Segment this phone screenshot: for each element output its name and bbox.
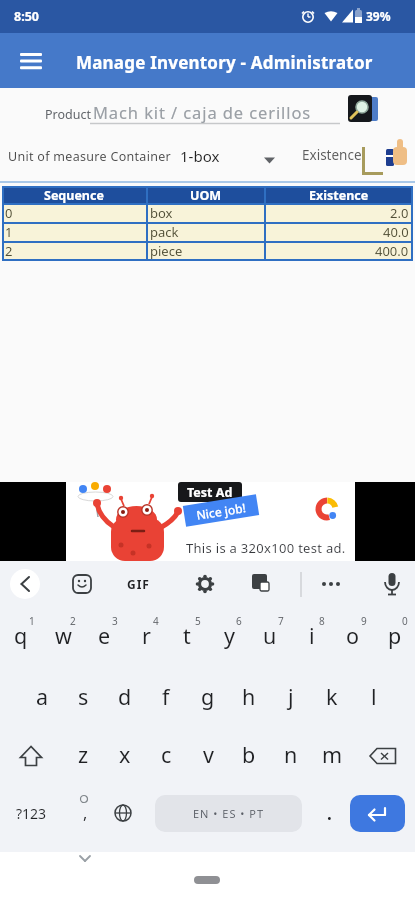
staticText: q — [14, 621, 28, 650]
staticText: g — [201, 682, 215, 711]
button[interactable]: p — [374, 608, 415, 663]
staticText: m — [322, 740, 343, 769]
staticText: 2.0 — [390, 204, 409, 222]
staticText: ?123 — [16, 804, 47, 823]
button[interactable]: z — [62, 727, 104, 782]
staticText: r — [142, 621, 151, 650]
staticText: piece — [150, 242, 183, 260]
staticText: d — [118, 682, 132, 711]
button[interactable]: r — [125, 608, 167, 663]
staticText: 2 — [5, 242, 13, 260]
button[interactable]: y — [208, 608, 250, 663]
staticText: v — [203, 740, 214, 769]
button[interactable]: m — [311, 727, 353, 782]
staticText: f — [162, 682, 170, 711]
staticText: GIF — [127, 576, 150, 592]
button[interactable] — [0, 727, 62, 782]
staticText: w — [55, 621, 72, 650]
button[interactable]: k — [311, 669, 353, 724]
button[interactable]: a — [21, 669, 63, 724]
staticText: 1 — [5, 223, 13, 241]
staticText: 8:50 — [14, 8, 39, 25]
staticText: 9 — [361, 614, 367, 628]
staticText: l — [371, 682, 377, 711]
staticText: n — [284, 740, 298, 769]
button[interactable]: b — [228, 727, 270, 782]
button[interactable]: n — [270, 727, 312, 782]
button[interactable]: l — [353, 669, 395, 724]
button[interactable]: t — [166, 608, 208, 663]
button[interactable] — [106, 790, 140, 836]
staticText: k — [326, 682, 338, 711]
staticText: pack — [150, 223, 179, 241]
staticText: Product — [45, 106, 91, 123]
staticText: 2 — [70, 614, 76, 628]
button[interactable]: , — [68, 790, 102, 836]
button[interactable]: v — [187, 727, 229, 782]
staticText: Existence — [309, 187, 369, 204]
staticText: Existence — [302, 146, 362, 164]
button[interactable]: j — [270, 669, 312, 724]
staticText: Mach kit / caja de cerillos — [93, 101, 312, 123]
button[interactable]: u — [249, 608, 291, 663]
staticText: Unit of measure Container — [8, 148, 172, 165]
button[interactable]: EN • ES • PT — [155, 795, 302, 832]
button[interactable] — [353, 727, 415, 782]
staticText: 400.0 — [375, 242, 409, 260]
button[interactable]: x — [104, 727, 146, 782]
staticText: c — [161, 740, 172, 769]
staticText: EN • ES • PT — [193, 806, 265, 821]
staticText: j — [288, 682, 294, 711]
staticText: s — [78, 682, 89, 711]
staticText: Nice job! — [195, 499, 247, 523]
staticText: o — [346, 621, 360, 650]
staticText: Sequence — [44, 187, 104, 204]
staticText: y — [224, 621, 235, 650]
button[interactable]: f — [145, 669, 187, 724]
button[interactable]: g — [187, 669, 229, 724]
staticText: 5 — [195, 614, 201, 628]
staticText: 0 — [5, 204, 13, 222]
staticText: box — [150, 204, 173, 222]
button[interactable]: . — [312, 790, 346, 836]
staticText: 39% — [366, 8, 391, 24]
button[interactable]: h — [228, 669, 270, 724]
button[interactable] — [350, 795, 405, 832]
button[interactable] — [175, 140, 280, 172]
staticText: u — [263, 621, 277, 650]
staticText: 4 — [153, 614, 159, 628]
staticText: t — [183, 621, 191, 650]
button[interactable] — [10, 43, 62, 79]
button[interactable]: d — [104, 669, 146, 724]
button[interactable]: ?123 — [6, 790, 56, 836]
staticText: , — [83, 802, 88, 824]
button[interactable] — [66, 482, 355, 561]
button[interactable]: o — [332, 608, 374, 663]
button[interactable]: q — [0, 608, 42, 663]
staticText: This is a 320x100 test ad. — [186, 539, 346, 557]
staticText: e — [98, 621, 111, 650]
button[interactable]: e — [83, 608, 125, 663]
staticText: a — [36, 682, 49, 711]
staticText: 8 — [319, 614, 325, 628]
staticText: 1 — [29, 614, 35, 628]
button[interactable]: i — [291, 608, 333, 663]
staticText: 1-box — [180, 146, 220, 166]
staticText: 6 — [236, 614, 242, 628]
button[interactable]: s — [62, 669, 104, 724]
staticText: z — [78, 740, 89, 769]
button[interactable] — [345, 92, 381, 126]
staticText: x — [119, 740, 131, 769]
staticText: Manage Inventory - Administrator — [76, 51, 373, 74]
staticText: p — [388, 621, 402, 650]
staticText: i — [309, 621, 315, 650]
staticText: b — [242, 740, 256, 769]
staticText: 7 — [278, 614, 284, 628]
staticText: 40.0 — [383, 223, 409, 241]
staticText: h — [242, 682, 256, 711]
staticText: UOM — [190, 187, 222, 204]
button[interactable]: w — [42, 608, 84, 663]
button[interactable]: c — [145, 727, 187, 782]
staticText: 3 — [112, 614, 118, 628]
staticText: 0 — [402, 614, 408, 628]
